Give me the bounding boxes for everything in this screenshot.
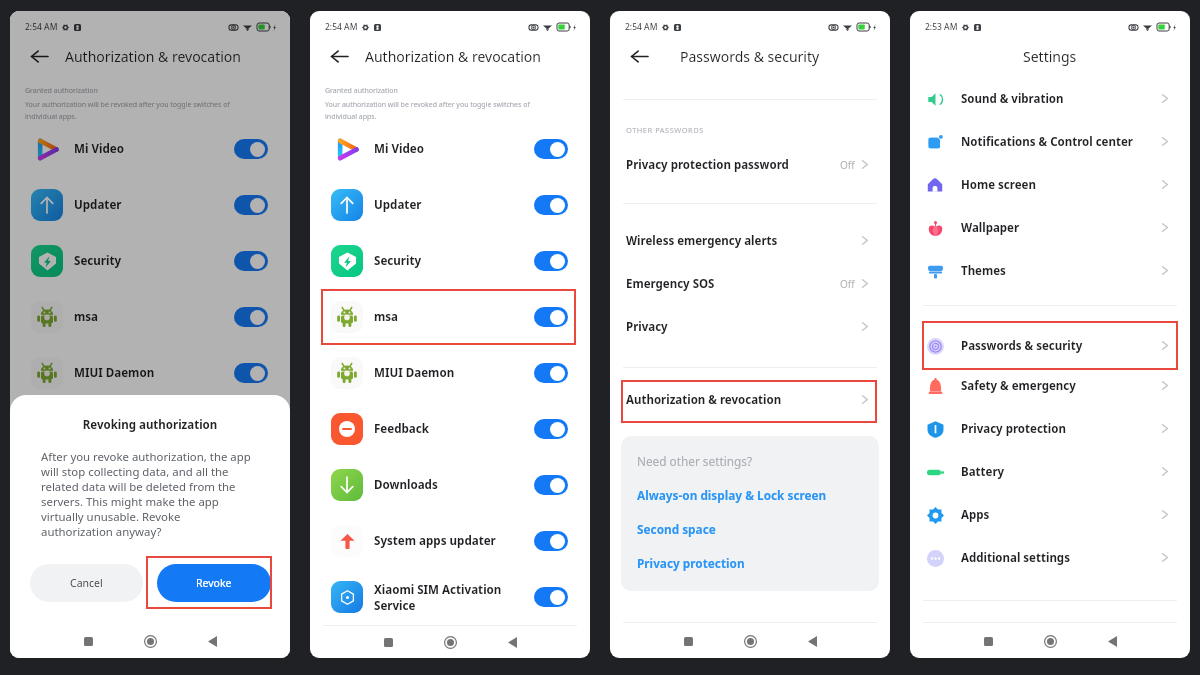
button[interactable]: Home xyxy=(1036,627,1064,655)
button[interactable]: Privacy xyxy=(610,305,890,348)
button[interactable]: Back xyxy=(26,43,52,69)
button[interactable]: Apps xyxy=(910,493,1190,536)
staticText: System apps updater xyxy=(374,533,534,549)
button[interactable]: Battery xyxy=(910,450,1190,493)
button[interactable]: Back xyxy=(498,628,526,656)
staticText: Privacy protection xyxy=(637,555,745,571)
staticText: Passwords & security xyxy=(961,338,1162,354)
button[interactable]: Back xyxy=(626,43,652,69)
button[interactable]: Wireless emergency alerts xyxy=(610,219,890,262)
button[interactable]: Security xyxy=(10,233,290,289)
staticText: Feedback xyxy=(374,421,534,437)
staticText: Settings xyxy=(1023,47,1077,66)
button[interactable]: Revoke authorization for Security xyxy=(534,251,568,271)
staticText: Revoke xyxy=(196,576,232,590)
button[interactable]: Revoke authorization for Mi Video xyxy=(234,139,268,159)
button[interactable]: Back xyxy=(326,43,352,69)
staticText: Authorization & revocation xyxy=(65,47,241,66)
staticText: Authorization & revocation xyxy=(365,47,541,66)
staticText: 2:54 AM xyxy=(325,21,358,33)
button[interactable]: Revoke authorization for Downloads xyxy=(534,475,568,495)
button[interactable]: Home xyxy=(736,627,764,655)
button[interactable]: Xiaomi SIM Activation Service xyxy=(310,569,590,625)
button[interactable]: Recents xyxy=(974,627,1002,655)
button[interactable]: Revoke authorization for msa xyxy=(534,307,568,327)
button[interactable]: Recents xyxy=(674,627,702,655)
button[interactable]: Downloads xyxy=(310,457,590,513)
staticText: Your authorization will be revoked after… xyxy=(25,100,230,121)
button[interactable]: Revoke xyxy=(157,564,271,602)
staticText: Authorization & revocation xyxy=(626,392,862,408)
button[interactable]: Themes xyxy=(910,249,1190,292)
button[interactable]: Updater xyxy=(10,177,290,233)
button[interactable]: Authorization & revocation xyxy=(610,378,890,421)
staticText: OTHER PASSWORDS xyxy=(626,125,704,135)
button[interactable]: Back xyxy=(798,627,826,655)
button[interactable]: Revoke authorization for Feedback xyxy=(534,419,568,439)
button[interactable]: Revoke authorization for Updater xyxy=(234,195,268,215)
button[interactable]: Privacy protection xyxy=(637,555,865,571)
staticText: Always-on display & Lock screen xyxy=(637,487,827,503)
button[interactable]: msa xyxy=(10,289,290,345)
button[interactable]: Safety & emergency xyxy=(910,364,1190,407)
button[interactable]: Home xyxy=(436,628,464,656)
staticText: 2:54 AM xyxy=(25,21,58,33)
button[interactable]: Recents xyxy=(374,628,402,656)
button[interactable]: System apps updater xyxy=(310,513,590,569)
staticText: Off xyxy=(840,277,855,291)
button[interactable]: Privacy protection password xyxy=(610,143,890,186)
staticText: Notifications & Control center xyxy=(961,134,1162,150)
button[interactable]: Recents xyxy=(74,627,102,655)
button[interactable]: Feedback xyxy=(310,401,590,457)
staticText: MIUI Daemon xyxy=(374,365,534,381)
staticText: Second space xyxy=(637,521,716,537)
staticText: 2:53 AM xyxy=(925,21,958,33)
button[interactable]: Home xyxy=(136,627,164,655)
button[interactable]: Additional settings xyxy=(910,536,1190,579)
button[interactable]: Revoke authorization for MIUI Daemon xyxy=(534,363,568,383)
button[interactable]: Back xyxy=(198,627,226,655)
button[interactable]: Revoke authorization for MIUI Daemon xyxy=(234,363,268,383)
button[interactable]: Revoke authorization for msa xyxy=(234,307,268,327)
button[interactable]: Revoke authorization for Security xyxy=(234,251,268,271)
staticText: Wallpaper xyxy=(961,220,1162,236)
button[interactable]: Security xyxy=(310,233,590,289)
button[interactable]: Back xyxy=(1098,627,1126,655)
button[interactable]: Cancel xyxy=(30,564,143,602)
button[interactable]: MIUI Daemon xyxy=(310,345,590,401)
button[interactable]: Revoke authorization for Mi Video xyxy=(534,139,568,159)
button[interactable]: Always-on display & Lock screen xyxy=(637,487,865,503)
button[interactable]: Mi Video xyxy=(10,121,290,177)
staticText: Privacy protection xyxy=(961,421,1162,437)
button[interactable]: Sound & vibration xyxy=(910,77,1190,120)
button[interactable]: Wallpaper xyxy=(910,206,1190,249)
button[interactable]: Privacy protection xyxy=(910,407,1190,450)
button[interactable]: Mi Video xyxy=(310,121,590,177)
staticText: Mi Video xyxy=(374,141,534,157)
button[interactable]: Second space xyxy=(637,521,865,537)
staticText: 2:54 AM xyxy=(625,21,658,33)
button[interactable]: MIUI Daemon xyxy=(10,345,290,401)
staticText: msa xyxy=(74,309,234,325)
staticText: Off xyxy=(840,158,855,172)
staticText: Granted authorization xyxy=(25,86,98,96)
staticText: Privacy xyxy=(626,319,862,335)
button[interactable]: Notifications & Control center xyxy=(910,120,1190,163)
staticText: Mi Video xyxy=(74,141,234,157)
button[interactable]: Home screen xyxy=(910,163,1190,206)
staticText: After you revoke authorization, the app … xyxy=(41,449,251,539)
button[interactable]: Revoke authorization for System apps upd… xyxy=(534,531,568,551)
button[interactable]: Passwords & security xyxy=(910,321,1190,370)
staticText: Safety & emergency xyxy=(961,378,1162,394)
button[interactable]: Updater xyxy=(310,177,590,233)
button[interactable]: Revoke authorization for Xiaomi SIM Acti… xyxy=(534,587,568,607)
button[interactable]: msa xyxy=(310,289,590,345)
staticText: Battery xyxy=(961,464,1162,480)
button[interactable]: Emergency SOS xyxy=(610,262,890,305)
staticText: Emergency SOS xyxy=(626,276,840,292)
staticText: Xiaomi SIM Activation Service xyxy=(374,582,534,613)
staticText: Revoking authorization xyxy=(10,417,290,433)
button[interactable]: Revoke authorization for Updater xyxy=(534,195,568,215)
staticText: Cancel xyxy=(70,576,103,590)
staticText: Security xyxy=(374,253,534,269)
